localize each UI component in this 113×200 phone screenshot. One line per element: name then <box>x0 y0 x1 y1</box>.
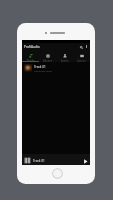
staticText: Albums <box>43 59 53 62</box>
button[interactable]: Albums <box>39 50 56 62</box>
staticText: Artists <box>61 59 69 62</box>
staticText: Genres <box>77 59 86 62</box>
staticText: Track 01 <box>34 65 46 69</box>
staticText: ProfiAudio <box>24 45 40 49</box>
button[interactable]: Tracks <box>22 50 39 62</box>
staticText: Tracks <box>27 59 35 62</box>
button[interactable]: Search <box>78 44 84 50</box>
button[interactable]: Genres <box>73 50 90 62</box>
button[interactable]: Play <box>81 157 89 165</box>
button[interactable]: Track 01 <box>22 63 90 73</box>
button[interactable]: Artists <box>56 50 73 62</box>
staticText: Unknown artist <box>34 69 52 72</box>
button[interactable]: Track 01 <box>22 156 90 165</box>
button[interactable]: More options <box>84 44 89 49</box>
staticText: Track 01 <box>33 159 45 163</box>
